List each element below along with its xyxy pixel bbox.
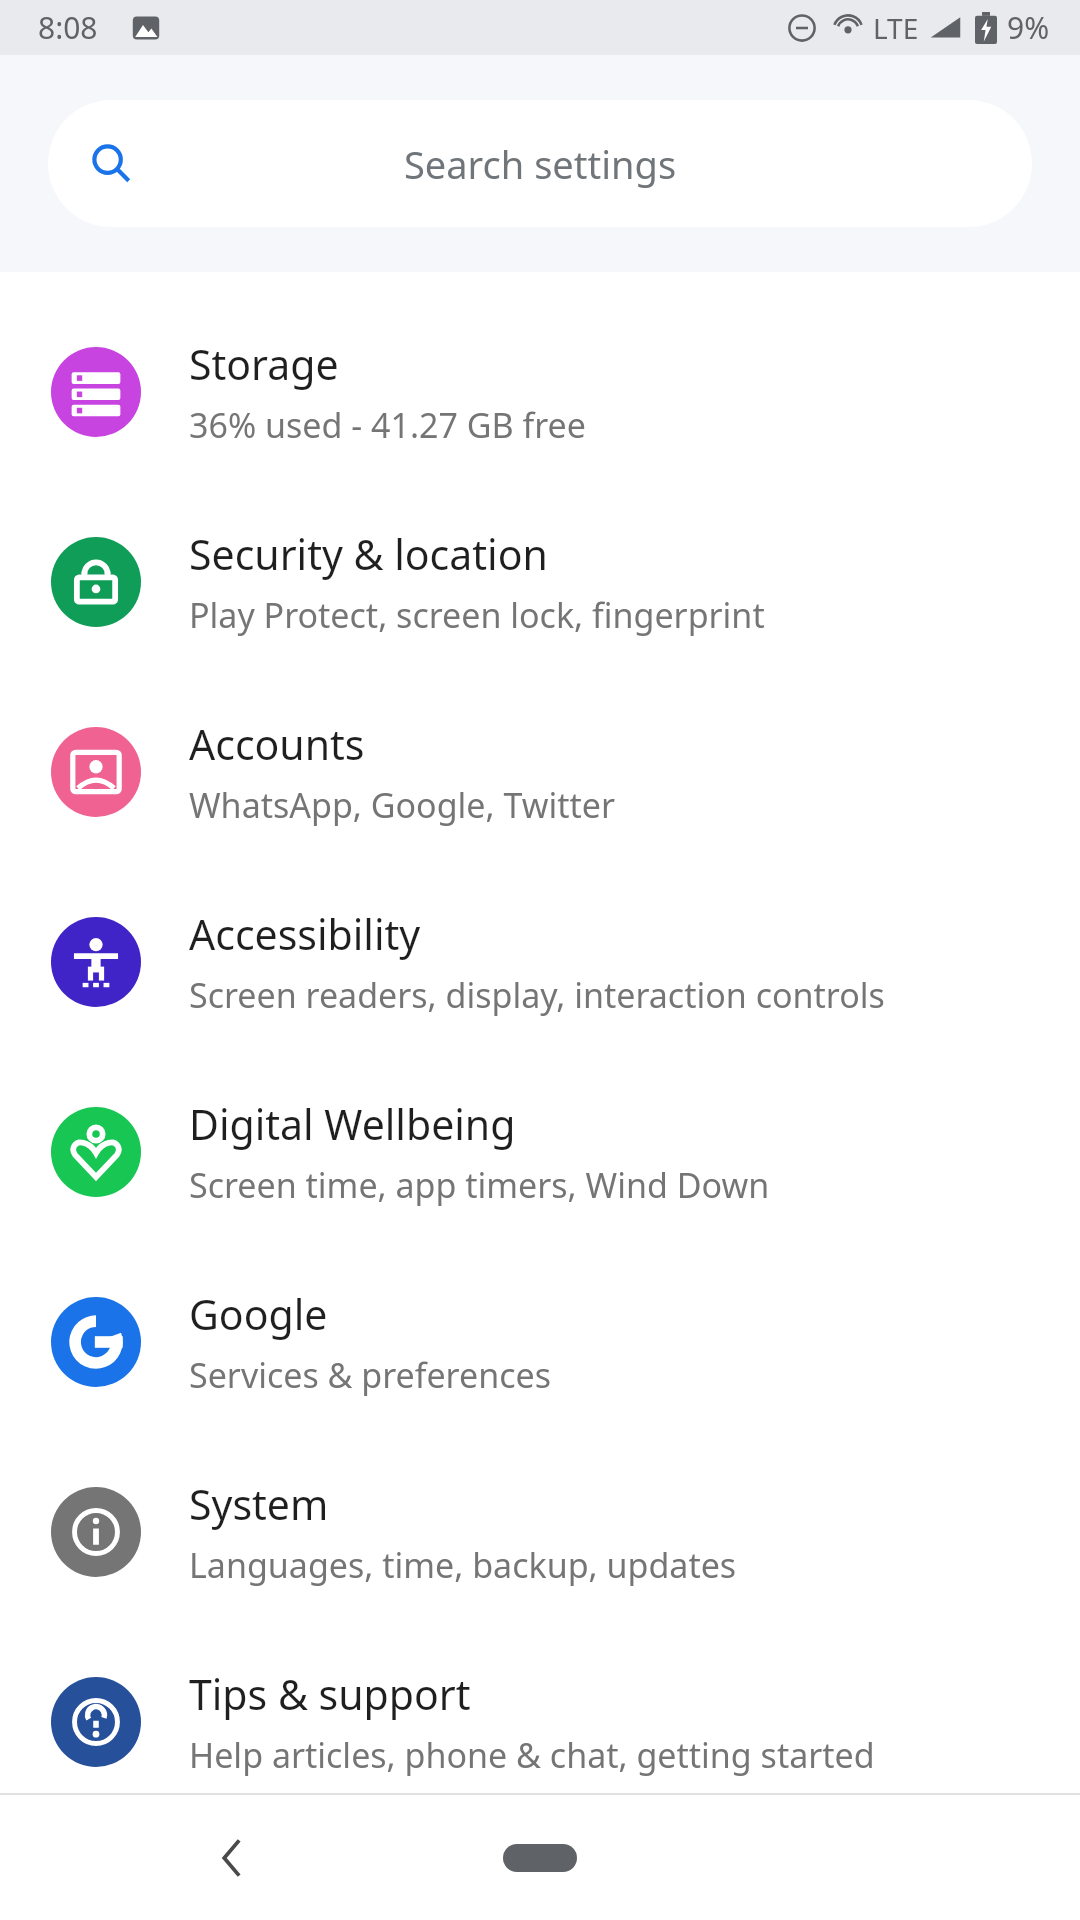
staticText: Search settings [404,138,677,190]
staticText: 9% [1007,7,1050,48]
staticText: Security & location [189,526,548,582]
button[interactable]: System [0,1437,1080,1627]
staticText: Play Protect, screen lock, fingerprint [189,592,765,638]
staticText: 8:08 [38,7,98,48]
staticText: Google [189,1286,328,1342]
button[interactable]: Accessibility [0,867,1080,1057]
button[interactable]: Tips & support [0,1627,1080,1817]
staticText: Accounts [189,716,365,772]
staticText: Help articles, phone & chat, getting sta… [189,1732,875,1778]
staticText: Screen readers, display, interaction con… [189,972,885,1018]
button[interactable]: Search [48,100,1032,227]
button[interactable]: Home [465,1818,615,1898]
staticText: Languages, time, backup, updates [189,1542,737,1588]
other: Search [90,142,134,186]
button[interactable]: Google [0,1247,1080,1437]
button[interactable]: Back [180,1805,285,1910]
staticText: System [189,1476,329,1532]
staticText: WhatsApp, Google, Twitter [189,782,615,828]
button[interactable]: Storage [0,297,1080,487]
staticText: Storage [189,336,339,392]
button[interactable]: Security & location [0,487,1080,677]
staticText: Accessibility [189,906,421,962]
staticText: Tips & support [189,1666,471,1722]
button[interactable]: Digital Wellbeing [0,1057,1080,1247]
staticText: Services & preferences [189,1352,551,1398]
button[interactable]: Accounts [0,677,1080,867]
staticText: Digital Wellbeing [189,1096,516,1152]
staticText: 36% used - 41.27 GB free [189,402,586,448]
staticText: Screen time, app timers, Wind Down [189,1162,770,1208]
staticText: LTE [873,9,919,47]
